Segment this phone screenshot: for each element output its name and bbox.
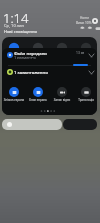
staticText: 1 завантаження <box>14 69 48 75</box>
button[interactable] <box>2 119 62 130</box>
staticText: Home <box>80 16 90 20</box>
staticText: Трансляція <box>75 98 97 102</box>
staticText: Знімок екрана <box>3 98 25 102</box>
staticText: Блок екрана <box>27 98 49 102</box>
staticText: Файл передано <box>14 50 47 56</box>
staticText: 13 хв <box>76 50 85 54</box>
button[interactable]: Знімок екрана <box>9 87 19 97</box>
staticText: Ср, 10 лип <box>4 23 24 28</box>
button[interactable]: Блок екрана <box>33 87 43 97</box>
staticText: Нові сповіщення <box>4 29 37 34</box>
staticText: 1:14 <box>3 9 29 27</box>
button[interactable]: Трансляція <box>81 87 91 97</box>
staticText: Запис відео <box>51 98 73 102</box>
staticText: 1 елемент•о <box>14 55 36 60</box>
other: Expand <box>89 71 94 74</box>
button[interactable]: Файл передано <box>2 48 97 66</box>
button[interactable]: Settings <box>92 18 98 24</box>
button[interactable]: Запис відео <box>57 87 67 97</box>
other: Expand <box>89 54 94 57</box>
staticText: Вимк 10% <box>76 21 92 25</box>
button[interactable] <box>63 119 97 130</box>
button[interactable]: 1 завантаження <box>2 67 97 79</box>
